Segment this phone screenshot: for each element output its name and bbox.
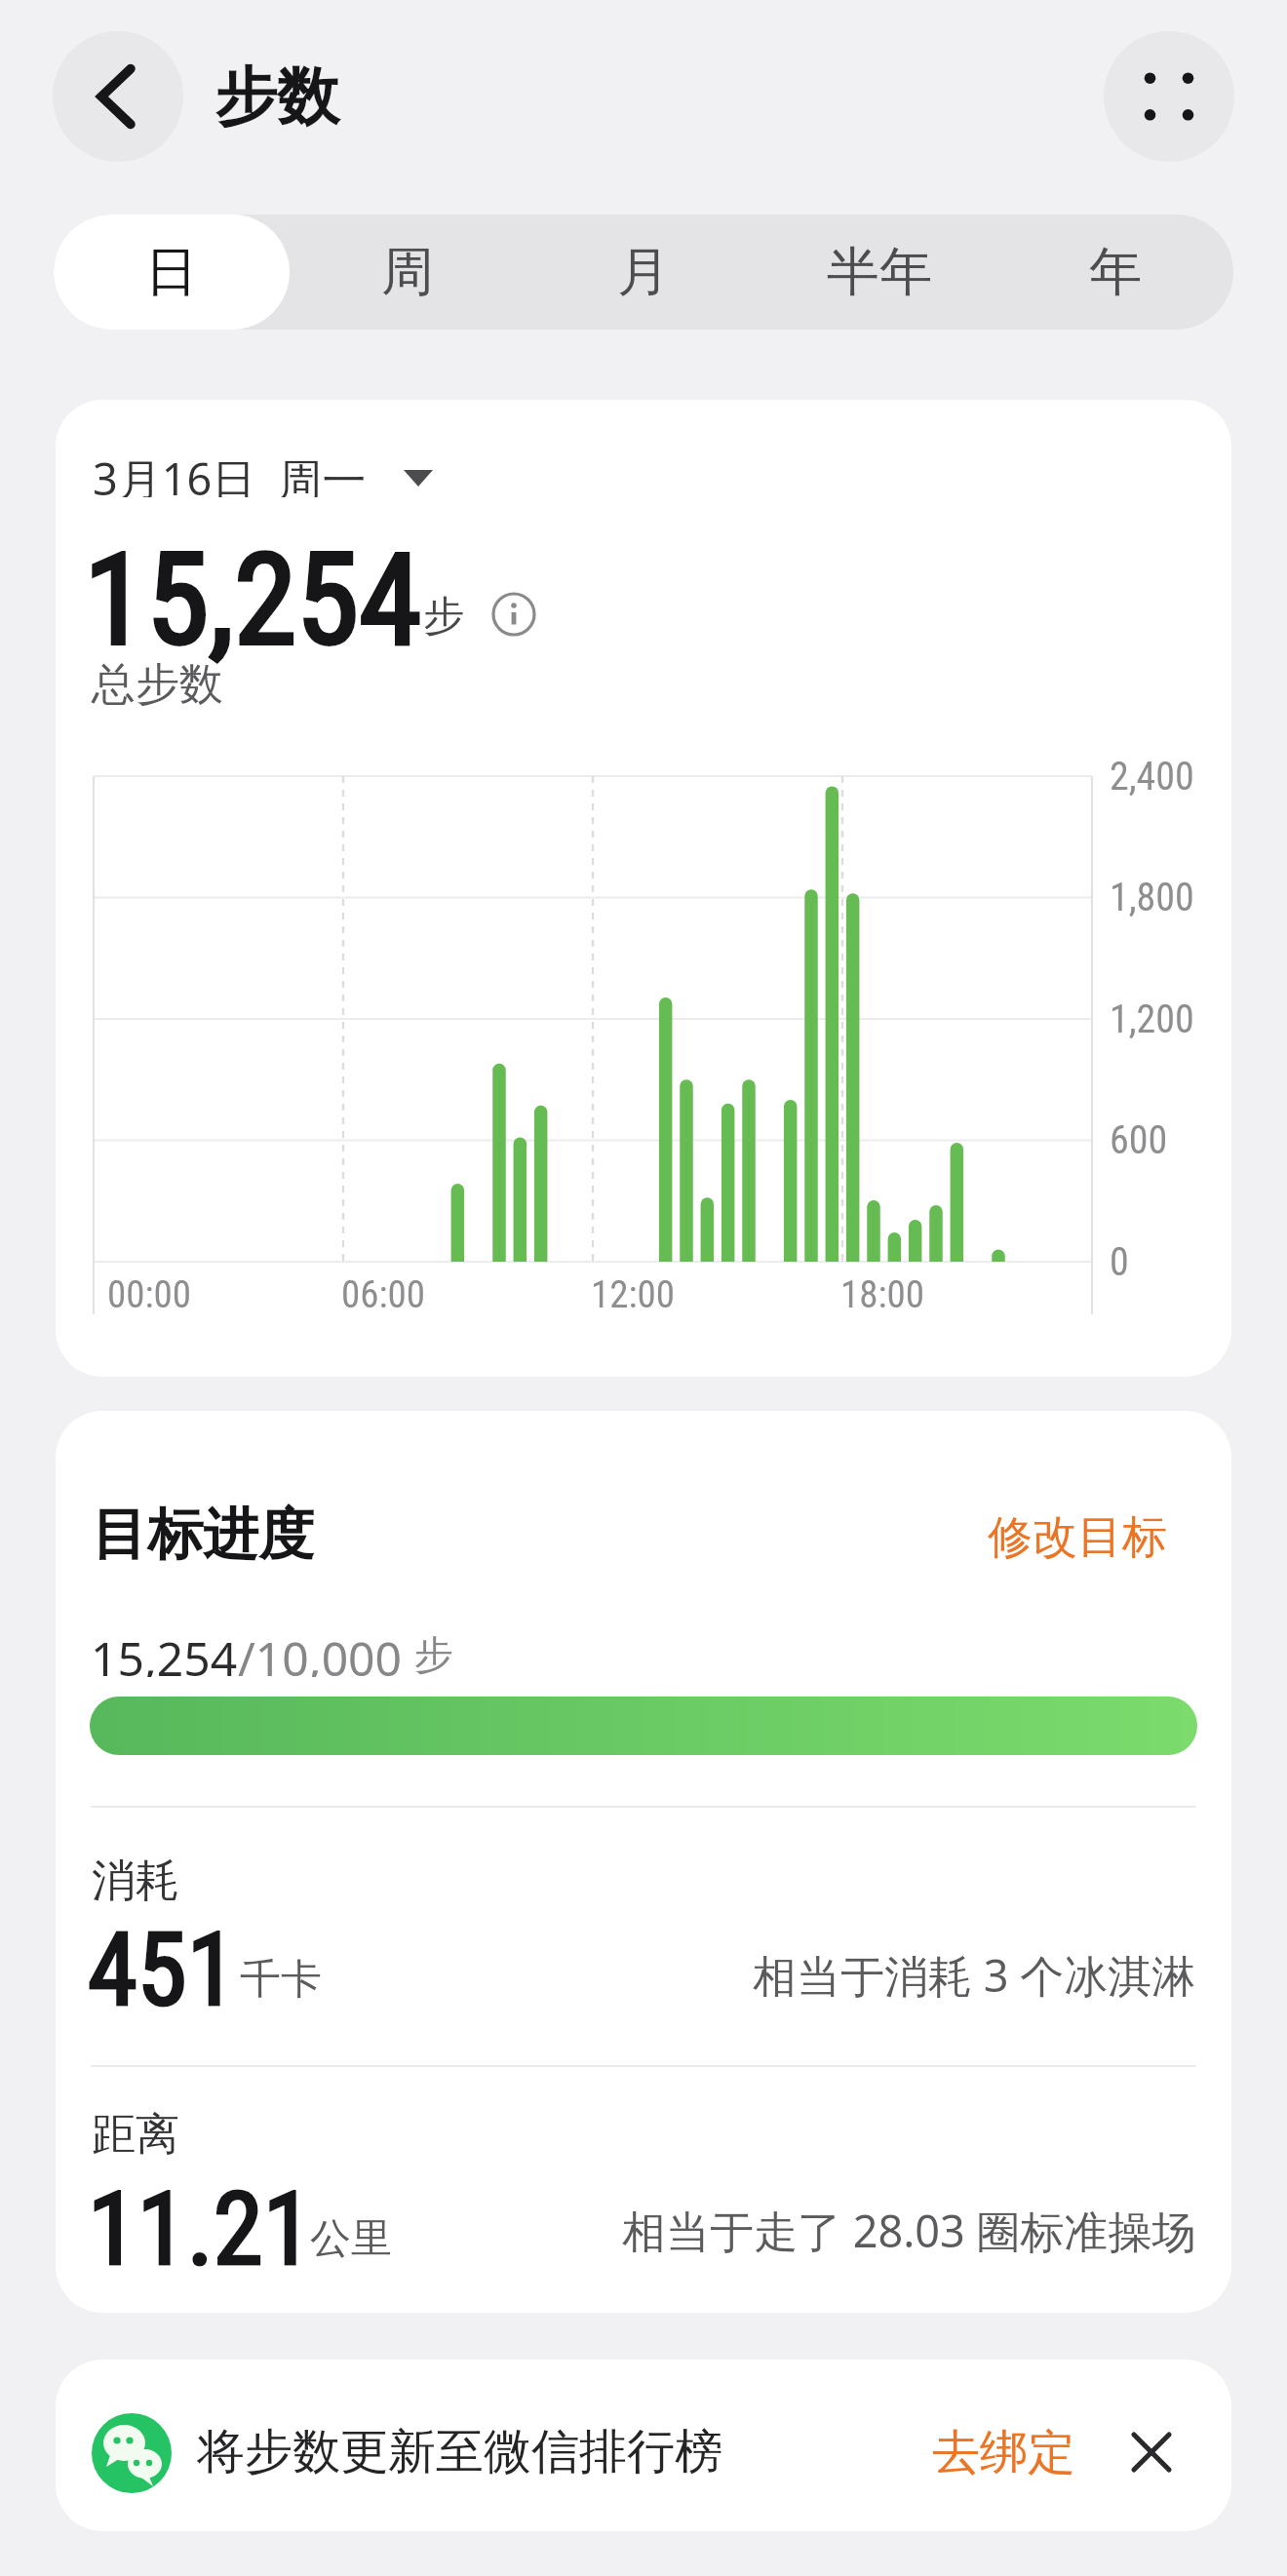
staticText: 总步数 bbox=[92, 657, 223, 713]
button[interactable] bbox=[1130, 2431, 1173, 2474]
staticText: 去绑定 bbox=[932, 2423, 1075, 2483]
button[interactable]: 周 bbox=[290, 215, 526, 330]
button[interactable]: 修改目标 bbox=[777, 1505, 1167, 1570]
staticText: 日 bbox=[145, 239, 198, 305]
button[interactable] bbox=[53, 31, 183, 162]
staticText: 15,254 bbox=[91, 1626, 238, 1677]
staticText: 周 bbox=[381, 239, 434, 305]
staticText: 06:00 bbox=[341, 1272, 426, 1317]
staticText: 步 bbox=[414, 1630, 453, 1679]
staticText: 年 bbox=[1089, 239, 1142, 305]
button[interactable]: 去绑定 bbox=[783, 2419, 1075, 2486]
staticText: 451 bbox=[88, 1911, 237, 2029]
staticText: 2,400 bbox=[1110, 754, 1194, 800]
staticText: 18:00 bbox=[840, 1272, 925, 1317]
staticText: 12:00 bbox=[591, 1272, 676, 1317]
staticText: 0 bbox=[1110, 1239, 1129, 1285]
button[interactable]: 日 bbox=[54, 215, 290, 330]
staticText: 15,254 bbox=[84, 526, 422, 674]
button[interactable]: 月 bbox=[526, 215, 761, 330]
staticText: 千卡 bbox=[240, 1954, 322, 2006]
button[interactable] bbox=[1104, 31, 1234, 162]
staticText: 步数 bbox=[214, 58, 339, 137]
staticText: 公里 bbox=[310, 2213, 392, 2265]
button[interactable]: 3月16日 周一 bbox=[93, 449, 433, 497]
button[interactable]: 半年 bbox=[761, 215, 997, 330]
staticText: 消耗 bbox=[92, 1854, 179, 1909]
staticText: 目标进度 bbox=[92, 1500, 314, 1570]
staticText: 11.21 bbox=[88, 2170, 313, 2288]
staticText: 半年 bbox=[827, 239, 932, 305]
staticText: 600 bbox=[1110, 1117, 1168, 1163]
staticText: 将步数更新至微信排行榜 bbox=[197, 2422, 722, 2482]
staticText: 00:00 bbox=[107, 1272, 192, 1317]
staticText: /10,000 bbox=[238, 1626, 403, 1677]
staticText: 修改目标 bbox=[988, 1509, 1167, 1566]
staticText: 相当于走了 28.03 圈标准操场 bbox=[622, 2201, 1196, 2260]
button[interactable]: 年 bbox=[997, 215, 1233, 330]
staticText: 相当于消耗 3 个冰淇淋 bbox=[753, 1945, 1196, 2005]
staticText: 3月16日 周一 bbox=[93, 449, 367, 497]
staticText: 距离 bbox=[92, 2107, 179, 2163]
button[interactable] bbox=[54, 215, 290, 330]
staticText: 月 bbox=[617, 239, 670, 305]
staticText: 1,200 bbox=[1110, 996, 1194, 1042]
staticText: 步 bbox=[423, 591, 464, 643]
staticText: 1,800 bbox=[1110, 875, 1194, 920]
button[interactable]: 将步数更新至微信排行榜 bbox=[56, 2360, 1231, 2531]
